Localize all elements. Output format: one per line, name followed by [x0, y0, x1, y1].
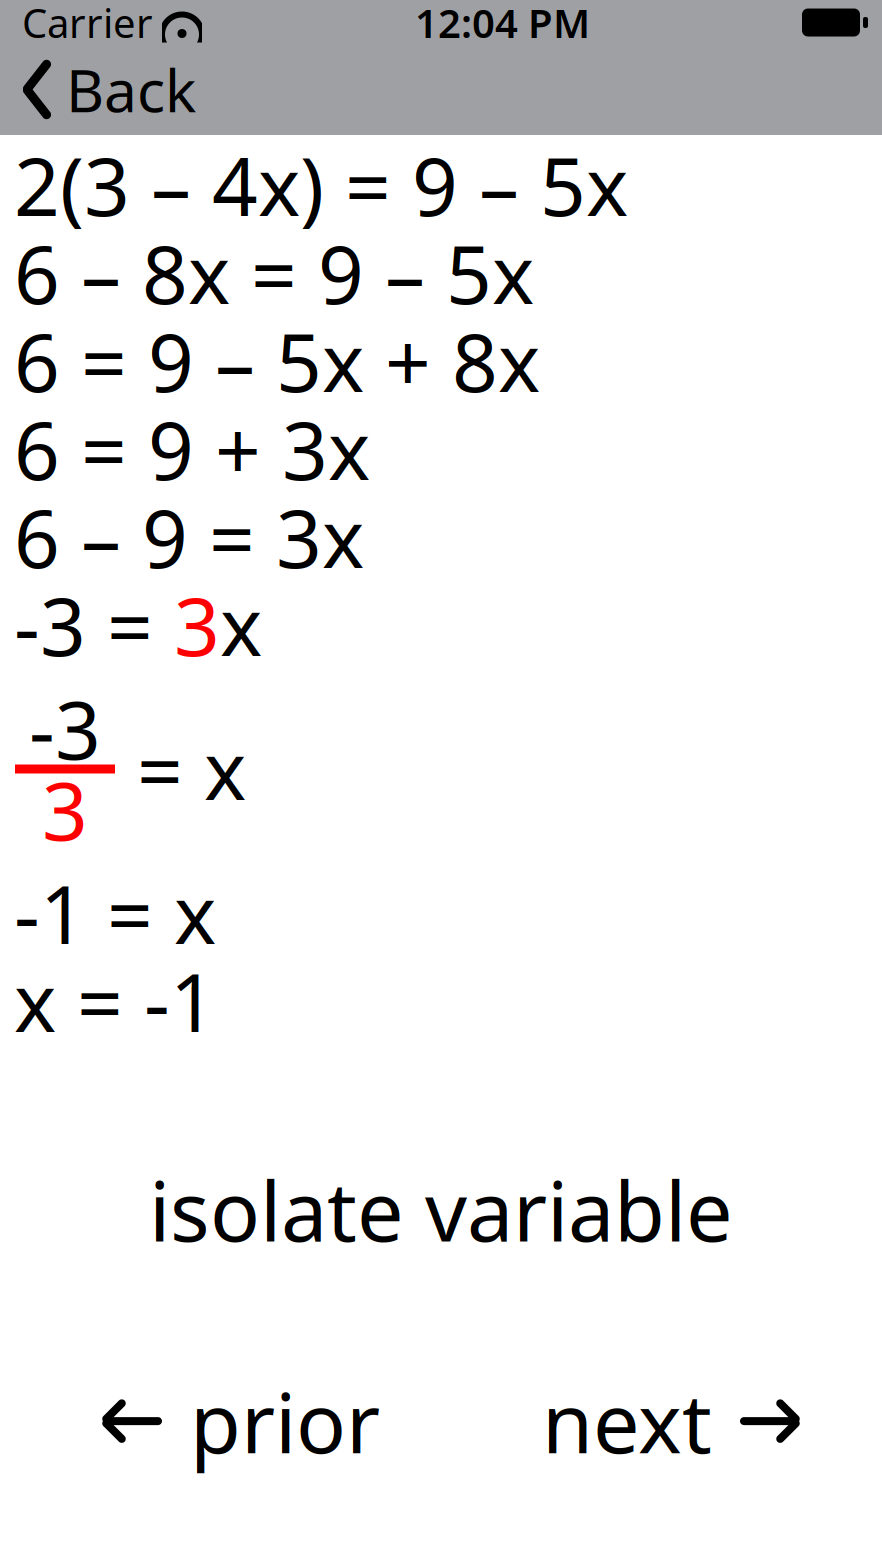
staticText: 12:04 PM: [415, 0, 590, 49]
staticText: 3: [174, 572, 220, 678]
staticText: 3: [42, 756, 88, 863]
staticText: isolate variable: [149, 1154, 733, 1264]
staticText: 6 = 9 – 5x + 8x: [14, 308, 540, 414]
staticText: -3: [29, 675, 101, 782]
staticText: -3 =: [14, 572, 174, 678]
staticText: next: [542, 1366, 712, 1476]
staticText: = x: [116, 716, 246, 822]
staticText: Back: [66, 50, 196, 128]
staticText: 6 = 9 + 3x: [14, 396, 370, 502]
staticText: 6 – 9 = 3x: [14, 484, 364, 590]
button[interactable]: Back: [0, 44, 210, 134]
staticText: 2(3 – 4x) = 9 – 5x: [14, 132, 628, 238]
staticText: -1 = x: [14, 860, 216, 966]
button[interactable]: prior: [82, 1350, 400, 1492]
button[interactable]: next: [522, 1350, 820, 1492]
staticText: 6 – 8x = 9 – 5x: [14, 220, 534, 326]
staticText: x = -1: [14, 948, 216, 1054]
staticText: Carrier: [22, 0, 153, 49]
staticText: x: [220, 572, 262, 678]
staticText: prior: [190, 1366, 380, 1476]
